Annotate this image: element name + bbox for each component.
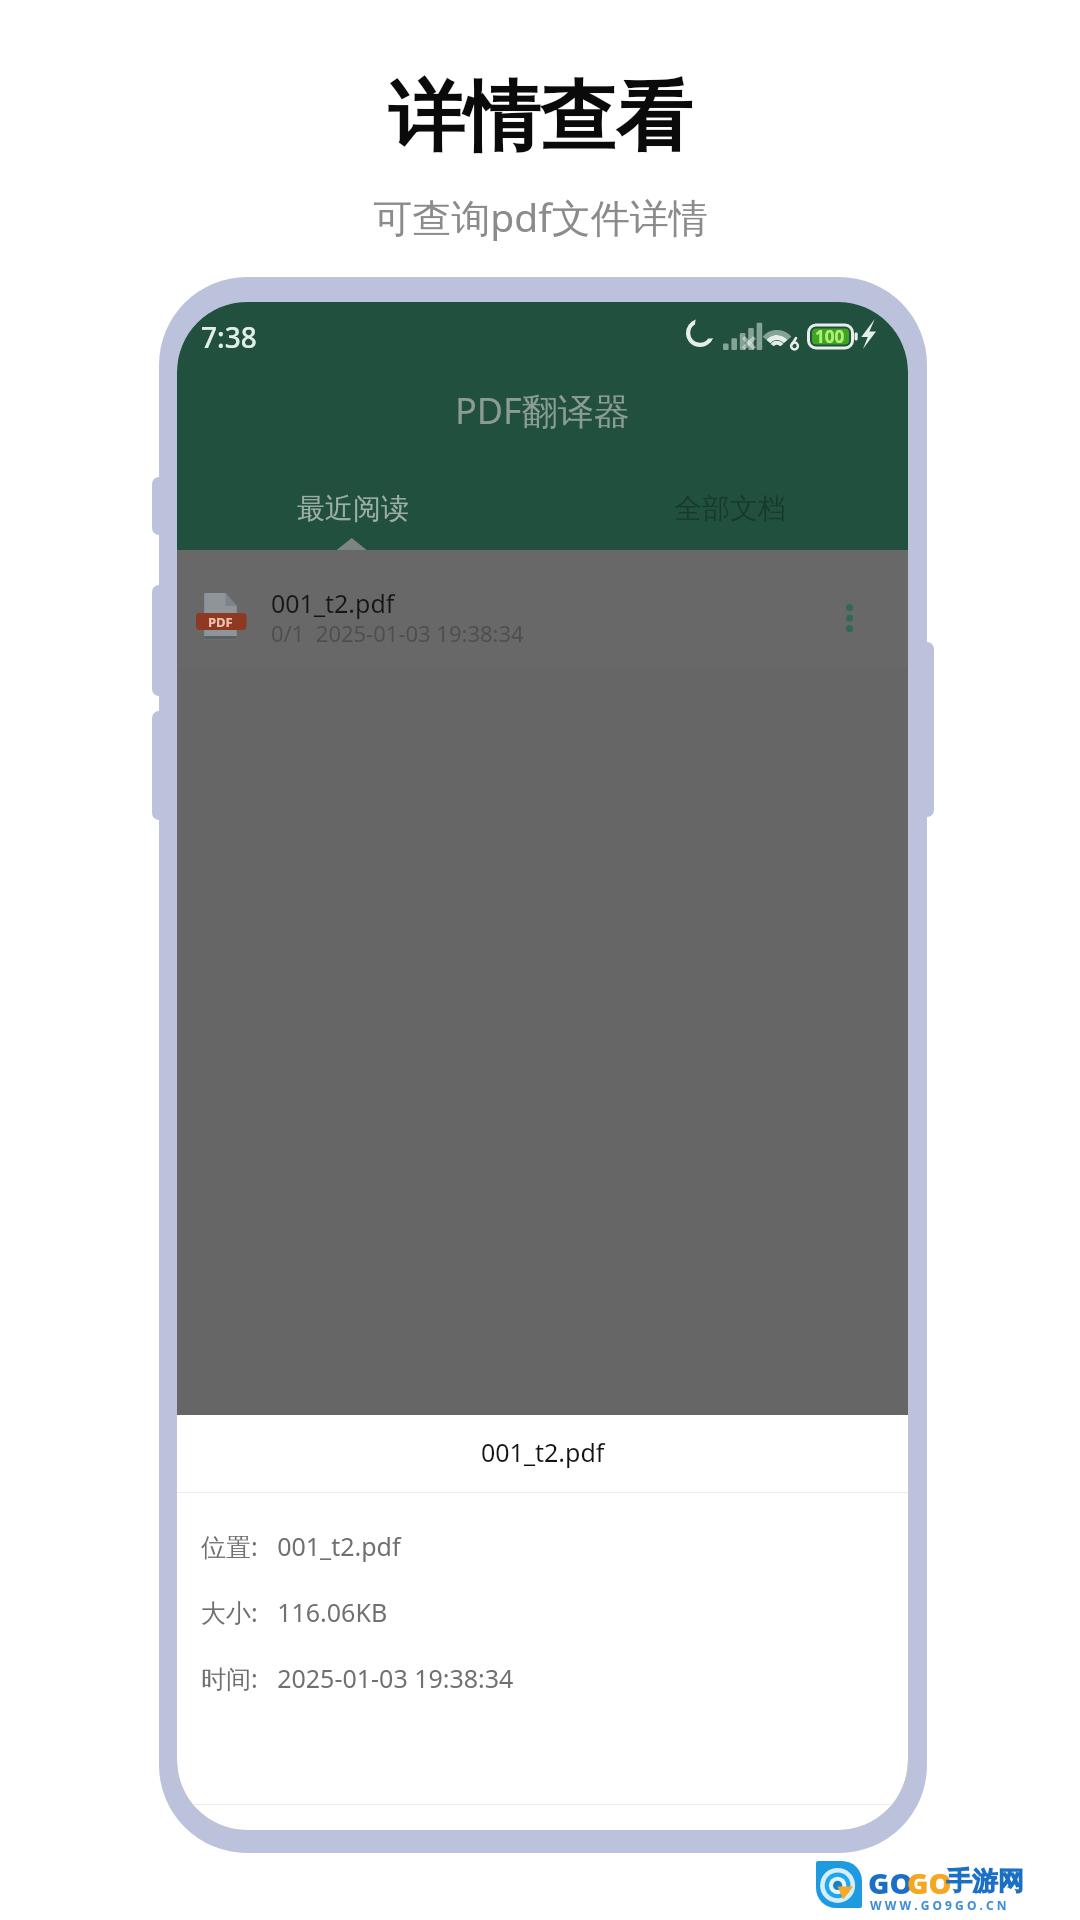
staticText: 0/1 2025-01-03 19:38:34	[271, 618, 524, 648]
staticText: 位置: 001_t2.pdf	[201, 1529, 401, 1563]
staticText: 大小: 116.06KB	[201, 1595, 388, 1629]
staticText: 001_t2.pdf	[271, 586, 395, 620]
staticText: 时间: 2025-01-03 19:38:34	[201, 1661, 514, 1695]
staticText: 001_t2.pdf	[481, 1435, 605, 1469]
staticText: 最近阅读	[297, 491, 409, 526]
button[interactable]: PDF	[177, 550, 908, 669]
staticText: GO	[868, 1863, 913, 1902]
button[interactable]: More options	[817, 586, 881, 650]
staticText: 100	[815, 325, 845, 348]
staticText: 全部文档	[674, 491, 786, 526]
staticText: GO	[907, 1863, 952, 1902]
staticText: 详情查看	[388, 70, 692, 166]
staticText: PDF	[208, 613, 233, 631]
staticText: W W W . G O 9 G O . C N	[870, 1897, 1007, 1913]
staticText: 手游网	[946, 1865, 1024, 1898]
staticText: PDF翻译器	[455, 386, 630, 435]
staticText: 7:38	[201, 318, 257, 356]
staticText: 可查询pdf文件详情	[373, 190, 708, 243]
button[interactable]: 最近阅读	[263, 480, 443, 536]
button[interactable]: 全部文档	[640, 480, 820, 536]
